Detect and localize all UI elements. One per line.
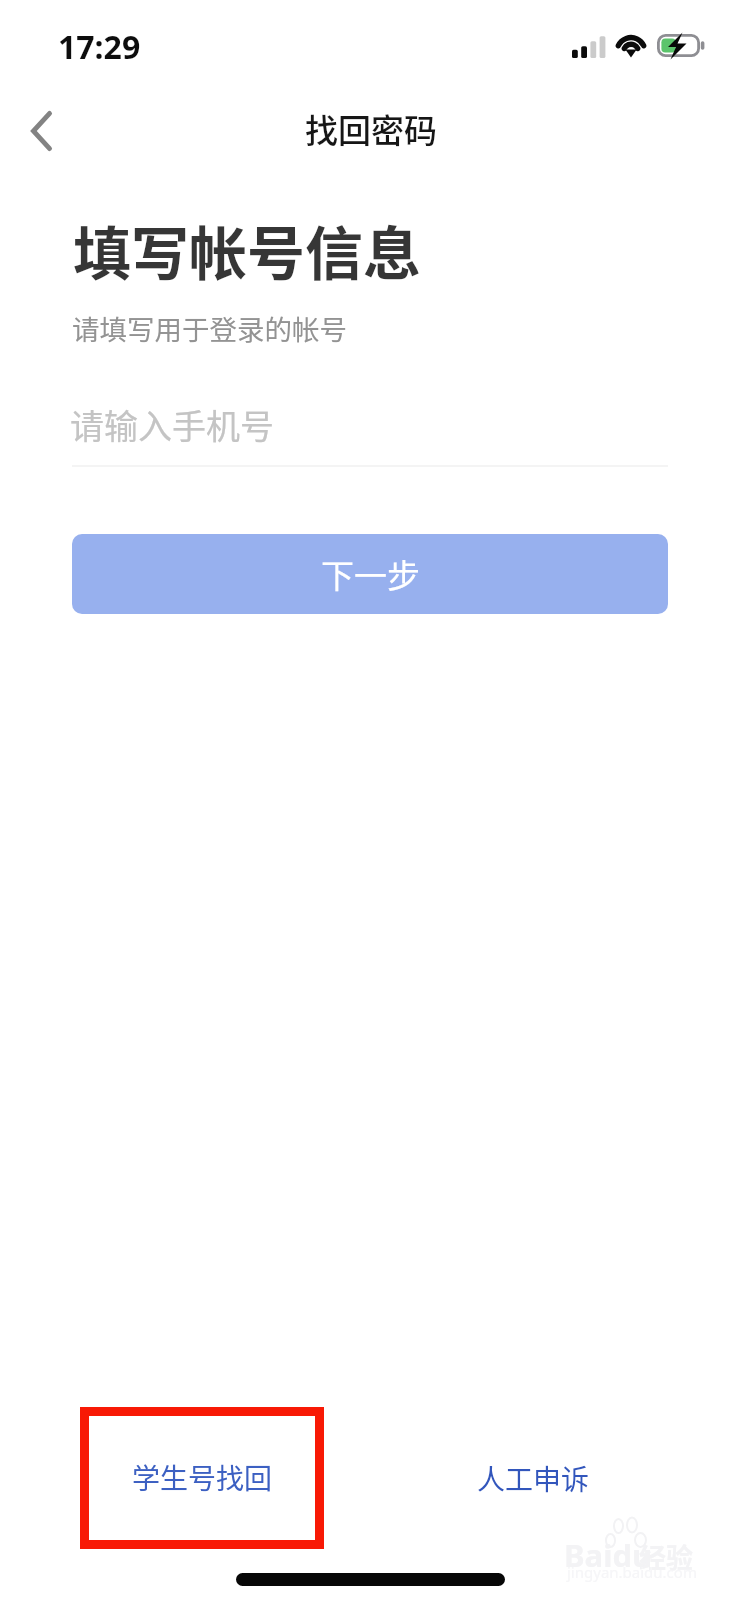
- staticText: 下一步: [321, 550, 420, 598]
- button[interactable]: 下一步: [72, 534, 668, 614]
- staticText: jingyan.baidu.com: [567, 1562, 697, 1582]
- staticText: 填写帐号信息: [73, 208, 422, 292]
- staticText: 请填写用于登录的帐号: [72, 308, 347, 348]
- staticText: 人工申诉: [477, 1458, 590, 1499]
- button[interactable]: 人工申诉: [442, 1433, 624, 1523]
- staticText: 学生号找回: [132, 1457, 273, 1498]
- staticText: 经验: [639, 1537, 693, 1576]
- button[interactable]: 请输入手机号: [70, 387, 668, 463]
- button[interactable]: Back: [6, 96, 76, 166]
- staticText: Baidu: [564, 1534, 653, 1576]
- staticText: 请输入手机号: [70, 400, 274, 449]
- button[interactable]: 学生号找回: [80, 1407, 324, 1549]
- staticText: 17:29: [58, 25, 141, 69]
- staticText: 找回密码: [305, 105, 437, 153]
